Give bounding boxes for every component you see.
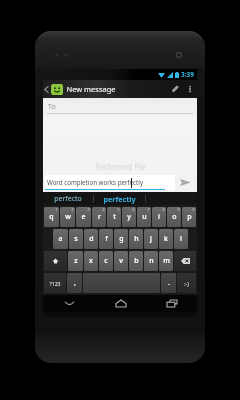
button[interactable]: b <box>129 251 143 271</box>
staticText: perfecto <box>54 194 82 204</box>
staticText: d <box>89 234 94 244</box>
staticText: i <box>158 212 160 222</box>
staticText: 7 <box>147 207 150 212</box>
staticText: 2 <box>71 207 74 212</box>
button[interactable]: l <box>174 229 188 249</box>
button[interactable]: To <box>43 98 197 114</box>
staticText: p <box>187 212 192 222</box>
button[interactable]: d <box>84 229 98 249</box>
staticText: k <box>164 234 168 244</box>
staticText: v <box>119 256 123 266</box>
staticText: . <box>168 278 170 288</box>
button[interactable]: h <box>129 229 143 249</box>
button[interactable]: f <box>99 229 113 249</box>
button[interactable]: Emoji <box>177 273 196 293</box>
staticText: Word completion works perfectly <box>47 178 144 186</box>
button[interactable]: , <box>67 273 82 293</box>
staticText: s <box>74 234 78 244</box>
staticText: 9 <box>177 207 180 212</box>
staticText: perfectly <box>103 194 136 204</box>
staticText: y <box>127 212 131 222</box>
button[interactable]: r <box>92 207 106 227</box>
button[interactable]: Delete <box>174 251 196 271</box>
staticText: z <box>74 256 78 266</box>
staticText: m <box>163 256 170 266</box>
staticText: n <box>149 256 154 266</box>
staticText: 4 <box>102 207 105 212</box>
button[interactable]: Shift <box>44 251 67 271</box>
staticText: :-) <box>184 280 189 287</box>
button[interactable]: Symbols <box>44 273 66 293</box>
button[interactable]: t <box>107 207 121 227</box>
staticText: Redmond Pie <box>95 161 146 172</box>
staticText: f <box>105 234 108 244</box>
button[interactable]: a <box>53 229 68 249</box>
button[interactable]: i <box>152 207 166 227</box>
staticText: o <box>172 212 177 222</box>
button[interactable]: Back <box>44 85 49 94</box>
staticText: a <box>58 234 63 244</box>
button[interactable]: q <box>44 207 59 227</box>
staticText: u <box>142 212 147 222</box>
button[interactable]: More options <box>185 82 195 96</box>
staticText: New message <box>66 84 116 94</box>
button[interactable]: perfecto <box>43 192 93 205</box>
staticText: 8 <box>162 207 165 212</box>
button[interactable]: e <box>76 207 91 227</box>
staticText: 0 <box>192 207 195 212</box>
button[interactable]: k <box>159 229 173 249</box>
staticText: ?123 <box>49 280 61 287</box>
button[interactable]: Word completion works perfectly <box>45 175 175 190</box>
button[interactable]: x <box>84 251 98 271</box>
button[interactable]: . <box>161 273 176 293</box>
staticText: 1 <box>55 207 58 212</box>
button[interactable]: Recents <box>146 295 197 312</box>
button[interactable] <box>83 273 160 293</box>
button[interactable]: y <box>122 207 136 227</box>
staticText: j <box>150 234 152 244</box>
button[interactable]: j <box>144 229 158 249</box>
button[interactable]: m <box>159 251 173 271</box>
staticText: r <box>98 212 101 222</box>
button[interactable]: w <box>60 207 75 227</box>
button[interactable]: Back <box>43 80 197 98</box>
button[interactable]: n <box>144 251 158 271</box>
staticText: l <box>180 234 182 244</box>
button[interactable]: v <box>114 251 128 271</box>
staticText: 3:39 <box>181 70 194 79</box>
button[interactable]: Send <box>175 174 195 190</box>
staticText: t <box>113 212 116 222</box>
button[interactable]: c <box>99 251 113 271</box>
staticText: g <box>119 234 124 244</box>
staticText: 3 <box>87 207 90 212</box>
staticText: To <box>48 102 56 112</box>
button[interactable]: g <box>114 229 128 249</box>
button[interactable]: Back <box>43 295 95 312</box>
staticText: w <box>65 212 71 222</box>
staticText: c <box>104 256 108 266</box>
staticText: 5 <box>117 207 120 212</box>
staticText: x <box>89 256 93 266</box>
staticText: e <box>81 212 86 222</box>
button[interactable]: u <box>137 207 151 227</box>
button[interactable]: s <box>69 229 83 249</box>
button[interactable]: o <box>167 207 181 227</box>
staticText: , <box>74 278 76 288</box>
staticText: 6 <box>132 207 135 212</box>
staticText: h <box>134 234 139 244</box>
button[interactable]: p <box>182 207 196 227</box>
button[interactable]: z <box>68 251 83 271</box>
button[interactable]: Home <box>95 295 146 312</box>
staticText: b <box>134 256 139 266</box>
staticText: q <box>49 212 54 222</box>
button[interactable]: perfectly <box>94 192 145 205</box>
button[interactable]: Attach <box>168 82 182 96</box>
